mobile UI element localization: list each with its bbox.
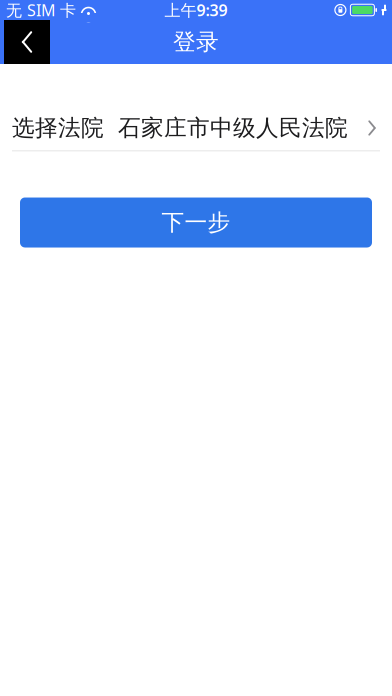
- staticText: 下一步: [161, 209, 230, 236]
- staticText: 登录: [173, 28, 219, 56]
- button[interactable]: 选择法院: [0, 106, 392, 151]
- staticText: 选择法院: [12, 114, 104, 142]
- button[interactable]: 下一步: [20, 197, 372, 247]
- staticText: 石家庄市中级人民法院: [118, 114, 348, 142]
- staticText: 上午9:39: [164, 0, 227, 21]
- button[interactable]: 返回: [4, 20, 50, 64]
- staticText: 无 SIM 卡: [6, 0, 76, 21]
